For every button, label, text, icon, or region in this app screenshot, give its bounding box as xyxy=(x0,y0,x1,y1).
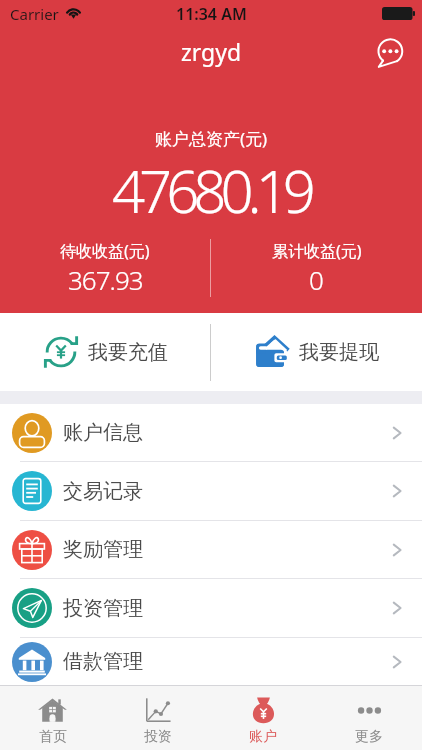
staticText: 奖励管理 xyxy=(63,537,143,562)
button[interactable]: 投资 xyxy=(105,686,210,750)
staticText: 367.93 xyxy=(68,262,143,297)
staticText: 投资管理 xyxy=(63,596,143,621)
button[interactable]: 借款管理 xyxy=(0,638,422,685)
button[interactable]: 奖励管理 xyxy=(0,521,422,579)
button[interactable]: 我要提现 xyxy=(211,313,422,391)
button[interactable]: 账户信息 xyxy=(0,404,422,462)
button[interactable]: 账户 xyxy=(210,686,316,750)
staticText: 首页 xyxy=(39,728,67,746)
button[interactable]: 投资管理 xyxy=(0,579,422,638)
staticText: 交易记录 xyxy=(63,479,143,504)
button[interactable]: 交易记录 xyxy=(0,462,422,521)
staticText: 投资 xyxy=(144,728,172,746)
staticText: 待收收益(元) xyxy=(60,240,150,262)
staticText: zrgyd xyxy=(181,36,242,67)
staticText: 0 xyxy=(309,262,324,297)
staticText: 借款管理 xyxy=(63,649,143,674)
staticText: 我要充值 xyxy=(88,340,168,365)
staticText: 更多 xyxy=(355,728,383,746)
staticText: 47680.19 xyxy=(112,151,310,230)
staticText: 账户总资产(元) xyxy=(155,127,268,150)
button[interactable]: 首页 xyxy=(0,686,105,750)
button[interactable]: 更多 xyxy=(316,686,422,750)
staticText: 账户信息 xyxy=(63,420,143,445)
staticText: 账户 xyxy=(249,728,277,746)
button[interactable]: 我要充值 xyxy=(0,313,210,391)
staticText: 累计收益(元) xyxy=(272,240,362,262)
button[interactable]: Messages xyxy=(368,33,410,75)
staticText: Carrier xyxy=(10,4,59,24)
staticText: 11:34 AM xyxy=(176,3,247,25)
staticText: 我要提现 xyxy=(299,340,379,365)
